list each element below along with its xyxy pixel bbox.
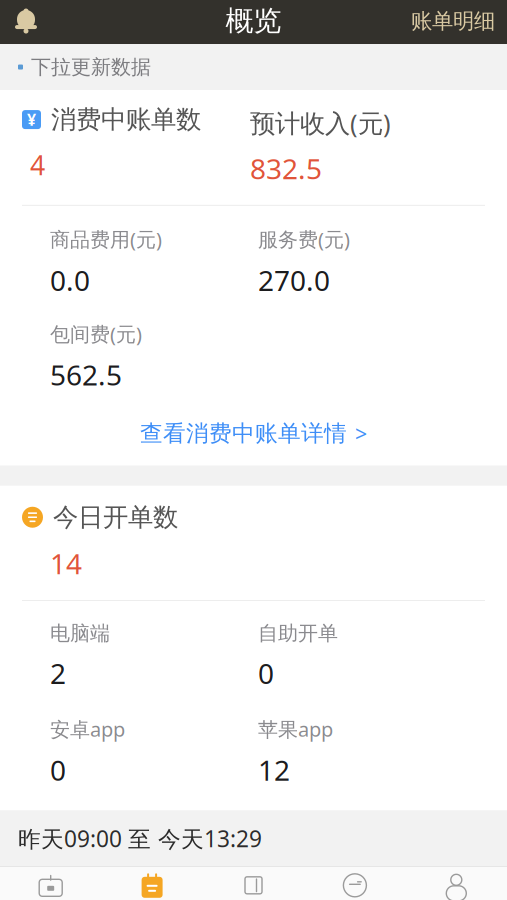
staticText: 今日开单数: [53, 502, 178, 533]
button[interactable]: 个人中心: [406, 867, 507, 900]
staticText: 下拉更新数据: [31, 55, 151, 79]
button[interactable]: 查看消费中账单详情: [0, 407, 507, 460]
staticText: 账单明细: [411, 8, 495, 34]
staticText: 包间费(元): [50, 321, 142, 347]
button[interactable]: 快捷功能: [203, 867, 304, 900]
staticText: 服务费(元): [258, 226, 350, 252]
staticText: 2: [50, 654, 66, 692]
staticText: 14: [50, 545, 82, 582]
button[interactable]: 报表: [304, 867, 406, 900]
staticText: 270.0: [258, 261, 330, 299]
staticText: 商品费用(元): [50, 226, 162, 252]
staticText: 12: [258, 751, 290, 788]
staticText: ¥: [27, 109, 36, 130]
button[interactable]: 通知: [0, 0, 52, 44]
staticText: 查看消费中账单详情: [140, 420, 347, 447]
button[interactable]: 营业: [0, 867, 101, 900]
staticText: 0: [258, 654, 274, 692]
staticText: 预计收入(元): [250, 106, 391, 140]
staticText: 自助开单: [258, 621, 338, 646]
staticText: 电脑端: [50, 621, 110, 646]
button[interactable]: 账单明细: [399, 0, 507, 44]
staticText: 4: [30, 147, 45, 183]
staticText: 消费中账单数: [51, 104, 201, 135]
staticText: 562.5: [50, 356, 122, 393]
button[interactable]: 账单: [101, 867, 203, 900]
staticText: 苹果app: [258, 716, 333, 742]
staticText: 安卓app: [50, 716, 125, 742]
staticText: 概览: [225, 4, 281, 38]
staticText: 0: [50, 751, 66, 788]
staticText: >: [355, 419, 367, 448]
staticText: 832.5: [250, 150, 322, 187]
staticText: 昨天09:00 至 今天13:29: [18, 823, 262, 853]
staticText: 0.0: [50, 261, 90, 299]
